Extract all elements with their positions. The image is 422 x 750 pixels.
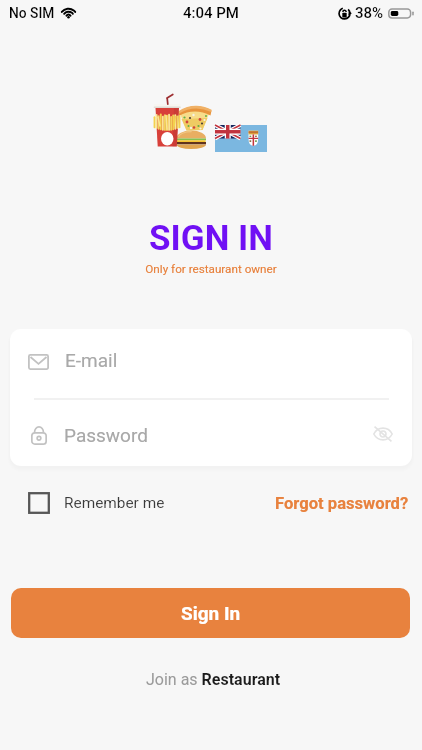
button[interactable]: Password [10, 401, 412, 466]
button[interactable]: Remember me [28, 489, 165, 517]
staticText: No SIM [9, 5, 55, 21]
staticText: Password [64, 424, 148, 446]
button[interactable]: Forgot password? [275, 489, 409, 517]
staticText: Remember me [64, 494, 165, 512]
button[interactable]: Join as Restaurant [142, 666, 285, 693]
staticText: 4:04 PM [183, 4, 239, 22]
staticText: Sign In [181, 602, 241, 624]
button[interactable]: E-mail [10, 329, 412, 395]
staticText: Forgot password? [275, 494, 409, 513]
staticText: 38% [355, 4, 384, 22]
staticText: SIGN IN [149, 218, 273, 259]
staticText: Join as Restaurant [146, 670, 281, 689]
button[interactable]: Show password [369, 420, 397, 448]
button[interactable]: Sign In [11, 588, 410, 638]
staticText: E-mail [65, 349, 118, 371]
staticText: Only for restaurant owner [145, 262, 277, 276]
